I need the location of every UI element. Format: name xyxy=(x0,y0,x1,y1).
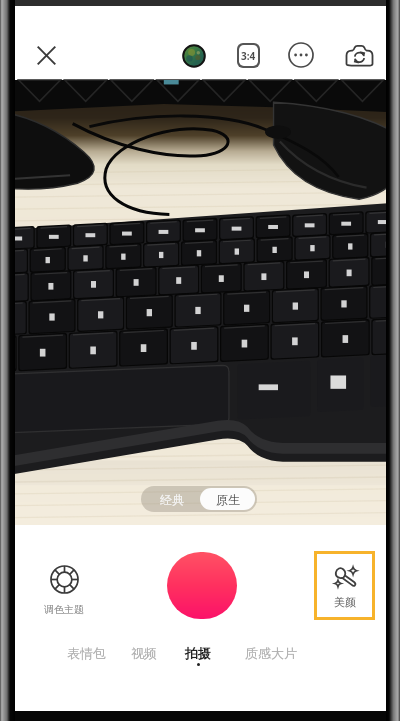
button[interactable]: Aspect ratio 3 to 4 xyxy=(231,38,266,73)
staticText: 3:4 xyxy=(241,49,256,63)
button[interactable]: 表情包 xyxy=(66,645,106,661)
button[interactable]: Take photo xyxy=(167,552,237,619)
staticText: 质感大片 xyxy=(245,645,297,661)
button[interactable]: More options xyxy=(283,37,319,73)
button[interactable]: Switch camera xyxy=(341,37,377,73)
button[interactable]: 经典 xyxy=(143,488,200,510)
staticText: 美颜 xyxy=(334,595,356,609)
button[interactable]: 质感大片 xyxy=(239,645,303,661)
button[interactable]: 美颜 xyxy=(317,554,372,617)
staticText: 拍摄 xyxy=(185,645,211,661)
button[interactable]: Filter preview xyxy=(176,38,211,73)
staticText: 原生 xyxy=(216,492,240,507)
staticText: 经典 xyxy=(160,492,184,507)
button[interactable]: 视频 xyxy=(130,645,158,661)
button[interactable]: 调色主题 xyxy=(44,565,84,616)
button[interactable]: 拍摄 xyxy=(182,645,214,666)
button[interactable]: Close xyxy=(28,37,65,74)
staticText: 调色主题 xyxy=(44,603,84,616)
button[interactable]: 原生 xyxy=(200,488,255,510)
staticText: 视频 xyxy=(131,645,157,661)
staticText: 表情包 xyxy=(67,645,106,661)
